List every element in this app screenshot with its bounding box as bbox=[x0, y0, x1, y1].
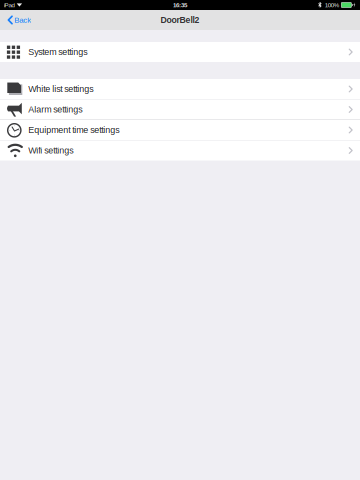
button[interactable]: White list settings bbox=[0, 79, 360, 99]
button[interactable]: Equipment time settings bbox=[0, 120, 360, 140]
button[interactable]: Wifi settings bbox=[0, 140, 360, 160]
staticText: 16:35 bbox=[173, 2, 187, 8]
staticText: DoorBell2 bbox=[160, 15, 199, 25]
staticText: 100% bbox=[325, 2, 339, 8]
staticText: System settings bbox=[28, 47, 87, 57]
button[interactable]: Alarm settings bbox=[0, 99, 360, 119]
staticText: Wifi settings bbox=[28, 145, 73, 155]
button[interactable]: Back bbox=[0, 11, 31, 29]
staticText: White list settings bbox=[28, 84, 93, 94]
staticText: Alarm settings bbox=[28, 104, 82, 114]
staticText: Equipment time settings bbox=[28, 125, 119, 135]
button[interactable]: System settings bbox=[0, 42, 360, 62]
staticText: Back bbox=[14, 16, 31, 24]
staticText: iPad bbox=[3, 2, 14, 8]
